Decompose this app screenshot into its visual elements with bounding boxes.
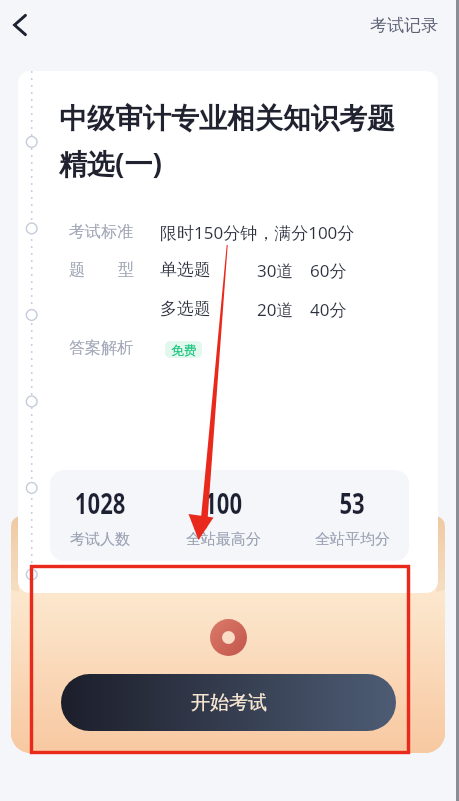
staticText: 中级审计专业相关知识考题精选(一) bbox=[59, 101, 407, 182]
button[interactable]: 开始考试 bbox=[61, 674, 396, 731]
staticText: 考试人数 bbox=[70, 530, 130, 549]
staticText: 单选题 bbox=[160, 259, 211, 280]
staticText: 开始考试 bbox=[191, 691, 267, 715]
staticText: 答案解析 bbox=[69, 338, 133, 358]
staticText: 考试记录 bbox=[370, 15, 438, 36]
staticText: 1028 bbox=[75, 484, 126, 522]
staticText: 40分 bbox=[310, 298, 347, 321]
staticText: 免费 bbox=[171, 342, 197, 358]
staticText: 型 bbox=[118, 260, 134, 280]
staticText: 全站最高分 bbox=[186, 530, 261, 549]
button[interactable]: 考试记录 bbox=[360, 3, 448, 47]
staticText: 30道 bbox=[257, 259, 294, 282]
staticText: 20道 bbox=[257, 298, 294, 321]
staticText: 限时150分钟，满分100分 bbox=[160, 221, 355, 244]
staticText: 多选题 bbox=[160, 298, 211, 319]
staticText: 100 bbox=[204, 484, 243, 522]
button[interactable]: Back bbox=[0, 2, 40, 48]
staticText: 全站平均分 bbox=[315, 530, 390, 549]
staticText: 题 bbox=[69, 260, 85, 280]
staticText: 53 bbox=[339, 484, 366, 522]
staticText: 考试标准 bbox=[69, 222, 133, 242]
staticText: 60分 bbox=[310, 259, 347, 282]
